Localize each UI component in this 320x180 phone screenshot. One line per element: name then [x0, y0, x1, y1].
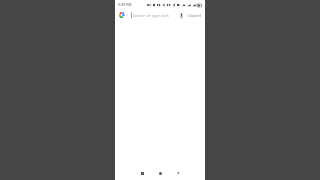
staticText: Cancel	[188, 13, 201, 18]
button[interactable]: Back	[172, 167, 184, 179]
button[interactable]: Search or type web address	[131, 9, 176, 21]
button[interactable]: Search engine: Google	[118, 11, 129, 19]
staticText: 5:49 PM	[118, 2, 132, 7]
button[interactable]: Voice search	[178, 10, 185, 20]
staticText: Search or type web address	[133, 13, 176, 18]
button[interactable]: Recent apps	[136, 167, 148, 179]
button[interactable]: Home	[154, 167, 166, 179]
button[interactable]: Cancel	[187, 9, 202, 21]
